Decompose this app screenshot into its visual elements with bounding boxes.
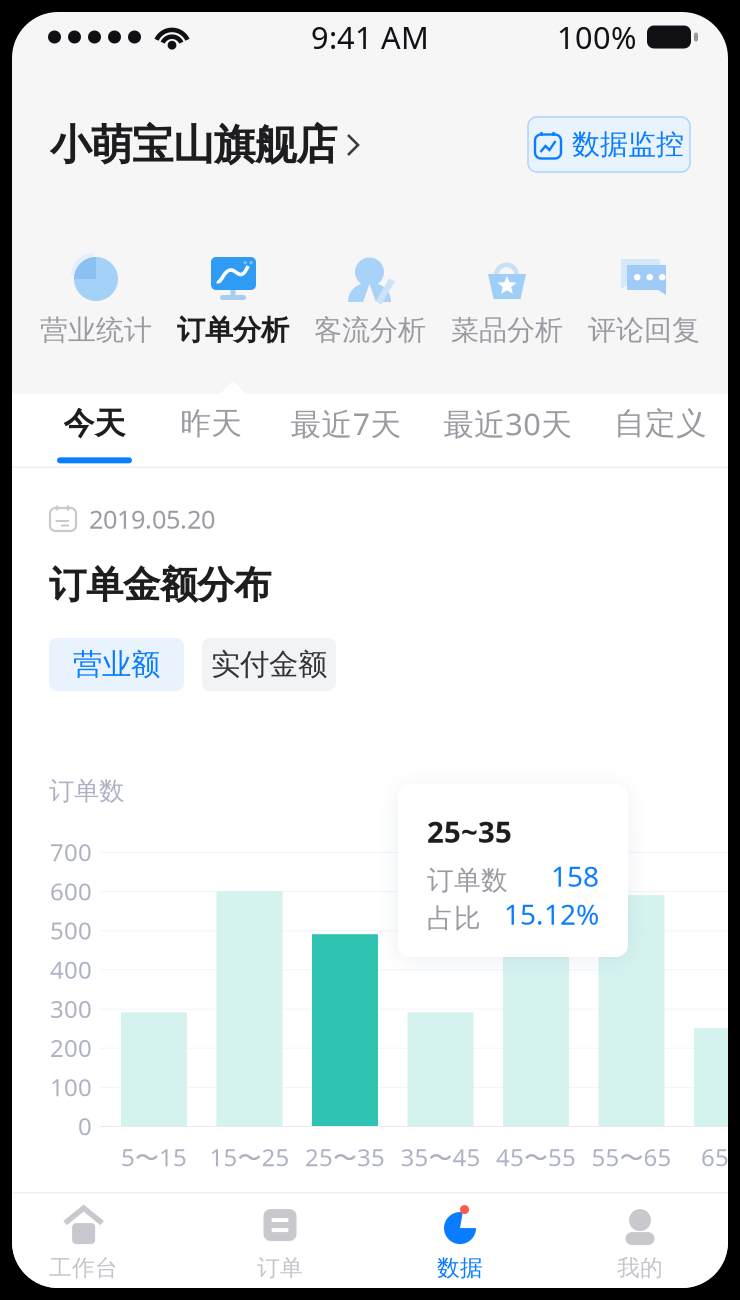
staticText: 65〜 [701, 1141, 740, 1173]
staticText: 昨天 [180, 405, 242, 442]
button[interactable]: 客流分析 [301, 192, 438, 381]
button[interactable]: 我的 [580, 1192, 700, 1288]
button[interactable]: 自定义 [611, 394, 710, 468]
button[interactable]: 营业额 [49, 638, 184, 691]
staticText: 158 [551, 857, 599, 895]
staticText: 600 [50, 875, 92, 907]
button[interactable]: 数据 [400, 1192, 520, 1288]
button[interactable]: 实付金额 [202, 638, 336, 691]
staticText: 实付金额 [211, 646, 327, 682]
button[interactable]: 营业统计 [27, 192, 164, 381]
button[interactable]: 订单 [220, 1192, 340, 1288]
staticText: 订单分析 [177, 313, 289, 347]
staticText: 200 [50, 1032, 92, 1064]
staticText: 营业额 [73, 646, 160, 682]
staticText: 自定义 [614, 405, 707, 442]
staticText: 25〜35 [305, 1141, 385, 1173]
staticText: 占比 [427, 902, 481, 935]
staticText: 工作台 [49, 1254, 118, 1282]
staticText: 客流分析 [314, 313, 426, 347]
staticText: 数据监控 [572, 127, 684, 162]
staticText: 100% [557, 17, 636, 57]
button[interactable]: 最近7天 [287, 394, 404, 468]
staticText: 订单数 [49, 775, 124, 806]
staticText: 35〜45 [400, 1141, 480, 1173]
staticText: 小萌宝山旗舰店 [50, 120, 337, 170]
button[interactable]: 今天 [54, 394, 135, 468]
staticText: 55〜65 [591, 1141, 671, 1173]
staticText: 2019.05.20 [89, 502, 215, 536]
staticText: 最近7天 [290, 403, 401, 444]
staticText: 15〜25 [209, 1141, 289, 1173]
button[interactable]: 订单分析 [164, 192, 301, 381]
staticText: 0 [78, 1110, 92, 1142]
staticText: 300 [50, 993, 92, 1024]
button[interactable]: 小萌宝山旗舰店 [50, 119, 361, 171]
staticText: 最近30天 [443, 403, 572, 444]
staticText: 数据 [437, 1254, 483, 1282]
staticText: 25~35 [427, 812, 512, 851]
staticText: 今天 [63, 405, 125, 442]
staticText: 100 [50, 1071, 92, 1103]
staticText: 5〜15 [121, 1141, 187, 1173]
staticText: 9:41 AM [311, 17, 429, 57]
staticText: 500 [50, 914, 92, 946]
button[interactable]: 昨天 [171, 394, 252, 468]
staticText: 订单金额分布 [49, 562, 271, 608]
button[interactable]: 最近30天 [440, 394, 575, 468]
button[interactable]: 工作台 [24, 1192, 144, 1288]
staticText: 营业统计 [40, 313, 152, 347]
staticText: 评论回复 [588, 313, 700, 347]
staticText: 订单数 [427, 864, 508, 897]
button[interactable]: 数据监控 [528, 117, 690, 172]
button[interactable]: 评论回复 [575, 192, 712, 381]
staticText: 订单 [257, 1254, 303, 1282]
staticText: 400 [50, 953, 92, 985]
button[interactable]: 菜品分析 [438, 192, 575, 381]
staticText: 45〜55 [496, 1141, 576, 1173]
staticText: 15.12% [504, 895, 599, 933]
staticText: 我的 [617, 1254, 663, 1282]
staticText: 700 [50, 836, 92, 868]
staticText: 菜品分析 [451, 313, 563, 347]
